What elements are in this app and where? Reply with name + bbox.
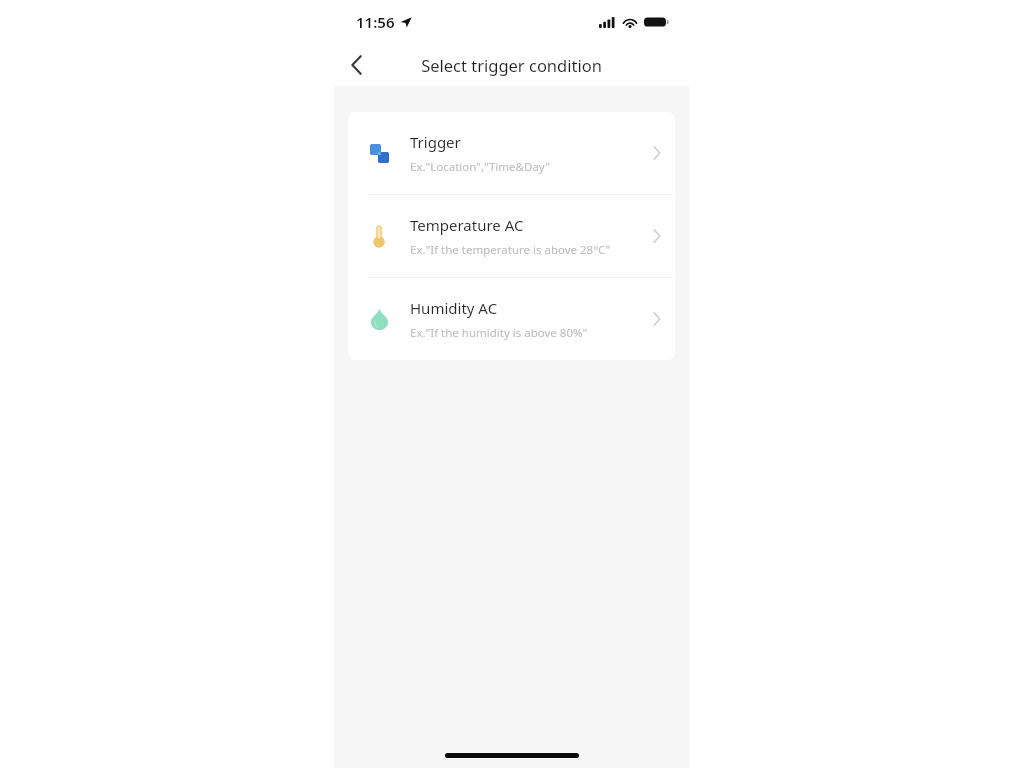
staticText: Trigger (410, 132, 461, 152)
staticText: Humidity AC (410, 298, 498, 318)
staticText: Ex."If the temperature is above 28°C" (410, 242, 611, 258)
staticText: 11:56 (356, 12, 395, 32)
staticText: Select trigger condition (421, 54, 602, 76)
staticText: Temperature AC (410, 215, 524, 235)
button[interactable]: Humidity AC (348, 278, 675, 360)
button[interactable]: Temperature AC (348, 195, 675, 277)
button[interactable]: Trigger (348, 112, 675, 194)
button[interactable]: Back (334, 44, 378, 86)
staticText: Ex."Location","Time&Day" (410, 159, 550, 175)
staticText: Ex."If the humidity is above 80%" (410, 325, 588, 341)
